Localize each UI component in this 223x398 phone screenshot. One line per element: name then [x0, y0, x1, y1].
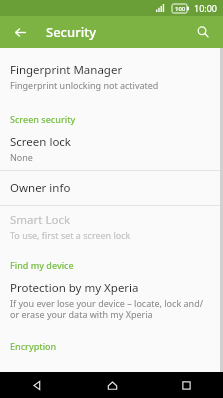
- button[interactable]: Encrypt phone: [0, 355, 223, 372]
- button[interactable]: Recent apps: [149, 372, 223, 398]
- staticText: Smart Lock: [10, 212, 71, 228]
- staticText: 10:00: [194, 2, 218, 14]
- button[interactable]: Owner info: [0, 171, 223, 205]
- staticText: Screen security: [10, 113, 76, 125]
- button[interactable]: Home: [75, 372, 149, 398]
- staticText: 100: [175, 5, 186, 13]
- staticText: Find my device: [10, 259, 74, 271]
- button[interactable]: Screen lock: [0, 128, 223, 170]
- button[interactable]: Search: [191, 20, 215, 44]
- button[interactable]: Protection by my Xperia: [0, 274, 223, 327]
- staticText: To use, first set a screen lock: [10, 229, 131, 241]
- staticText: Fingerprint unlocking not activated: [10, 79, 159, 91]
- button[interactable]: Fingerprint Manager: [0, 56, 223, 98]
- button[interactable]: Smart Lock: [0, 206, 223, 248]
- staticText: Owner info: [10, 180, 71, 196]
- staticText: If you ever lose your device – locate, l…: [10, 297, 209, 320]
- staticText: Security: [46, 23, 96, 41]
- button[interactable]: Back: [0, 372, 75, 398]
- staticText: None: [10, 151, 33, 163]
- staticText: Fingerprint Manager: [10, 62, 123, 78]
- staticText: Encryption: [10, 340, 57, 352]
- button[interactable]: Back: [8, 20, 32, 44]
- staticText: Screen lock: [10, 134, 72, 150]
- staticText: Protection by my Xperia: [10, 280, 139, 296]
